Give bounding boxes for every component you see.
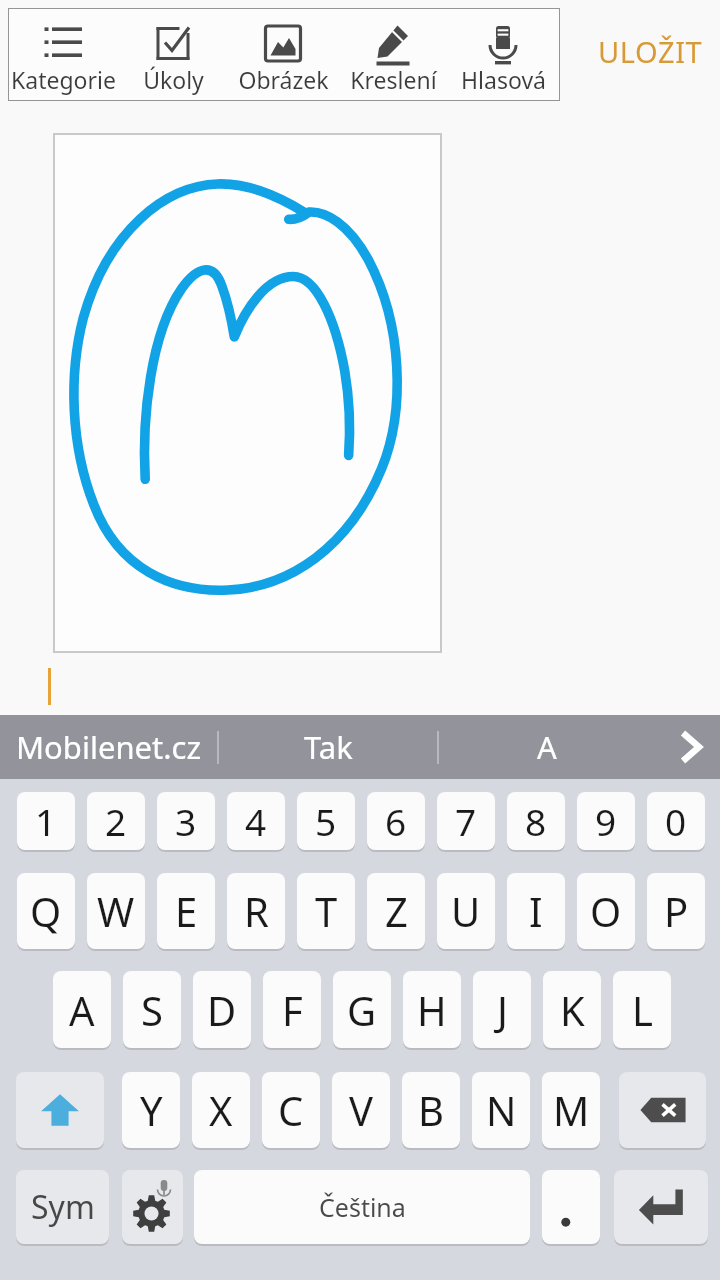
staticText: Q <box>30 884 62 938</box>
staticText: H <box>417 983 447 1037</box>
staticText: 8 <box>525 796 547 846</box>
button[interactable]: 8 <box>507 792 565 850</box>
button[interactable]: Kategorie <box>8 9 118 100</box>
staticText: Mobilenet.cz <box>16 726 202 768</box>
staticText: L <box>632 983 653 1037</box>
button[interactable]: T <box>297 873 355 949</box>
button[interactable]: A <box>53 971 111 1048</box>
button[interactable]: F <box>263 971 321 1048</box>
button[interactable]: L <box>613 971 671 1048</box>
button[interactable]: S <box>123 971 181 1048</box>
button[interactable]: C <box>262 1072 320 1148</box>
staticText: J <box>497 983 508 1037</box>
staticText: F <box>282 983 303 1037</box>
staticText: Čeština <box>319 1190 406 1224</box>
staticText: W <box>97 884 135 938</box>
staticText: I <box>529 884 543 938</box>
button[interactable]: Hlasová <box>448 9 558 100</box>
button[interactable]: Mobilenet.cz <box>0 715 217 779</box>
button[interactable]: U <box>437 873 495 949</box>
staticText: 5 <box>315 796 337 846</box>
button[interactable]: P <box>647 873 705 949</box>
button[interactable]: Tak <box>219 715 437 779</box>
staticText: Kategorie <box>11 64 116 95</box>
staticText: 2 <box>105 796 127 846</box>
button[interactable]: 0 <box>647 792 705 850</box>
staticText: N <box>486 1083 517 1137</box>
staticText: 1 <box>35 796 57 846</box>
staticText: Sym <box>31 1185 95 1229</box>
staticText: C <box>278 1083 304 1137</box>
button[interactable]: V <box>332 1072 390 1148</box>
button[interactable]: A <box>439 715 654 779</box>
staticText: A <box>537 726 557 768</box>
button[interactable]: R <box>227 873 285 949</box>
button[interactable]: N <box>472 1072 530 1148</box>
staticText: S <box>141 983 163 1037</box>
button[interactable]: 9 <box>577 792 635 850</box>
staticText: B <box>418 1083 444 1137</box>
staticText: R <box>244 884 269 938</box>
button[interactable]: E <box>157 873 215 949</box>
staticText: X <box>209 1083 233 1137</box>
button[interactable]: Sym <box>16 1170 109 1244</box>
button[interactable]: More suggestions <box>654 715 720 779</box>
button[interactable]: J <box>473 971 531 1048</box>
button[interactable]: Period <box>542 1170 600 1244</box>
button[interactable]: 1 <box>17 792 75 850</box>
button[interactable]: M <box>542 1072 600 1148</box>
staticText: G <box>347 983 377 1037</box>
button[interactable]: 4 <box>227 792 285 850</box>
staticText: M <box>553 1083 590 1137</box>
button[interactable]: Shift <box>16 1072 104 1148</box>
button[interactable]: 5 <box>297 792 355 850</box>
staticText: Z <box>385 884 408 938</box>
staticText: O <box>590 884 622 938</box>
button[interactable]: H <box>403 971 461 1048</box>
button[interactable]: B <box>402 1072 460 1148</box>
staticText: T <box>315 884 338 938</box>
button[interactable]: Úkoly <box>118 9 228 100</box>
button[interactable]: 3 <box>157 792 215 850</box>
button[interactable]: Z <box>367 873 425 949</box>
staticText: Y <box>140 1083 163 1137</box>
button[interactable]: W <box>87 873 145 949</box>
button[interactable]: Enter <box>614 1170 708 1244</box>
staticText: 9 <box>595 796 617 846</box>
staticText: K <box>560 983 585 1037</box>
button[interactable]: Kreslení <box>338 9 448 100</box>
button[interactable]: X <box>192 1072 250 1148</box>
staticText: D <box>207 983 237 1037</box>
staticText: Obrázek <box>238 64 329 95</box>
staticText: E <box>175 884 198 938</box>
staticText: U <box>451 884 481 938</box>
button[interactable]: O <box>577 873 635 949</box>
staticText: 6 <box>385 796 407 846</box>
staticText: V <box>349 1083 373 1137</box>
staticText: Hlasová <box>461 64 546 95</box>
staticText: Tak <box>304 726 353 768</box>
button[interactable]: Čeština <box>194 1170 530 1244</box>
button[interactable]: 6 <box>367 792 425 850</box>
staticText: Úkoly <box>143 64 204 95</box>
staticText: A <box>69 983 95 1037</box>
button[interactable]: Y <box>122 1072 180 1148</box>
staticText: Kreslení <box>350 64 437 95</box>
staticText: 4 <box>245 796 267 846</box>
button[interactable]: I <box>507 873 565 949</box>
button[interactable]: Obrázek <box>228 9 338 100</box>
button[interactable]: G <box>333 971 391 1048</box>
staticText: 7 <box>455 796 477 846</box>
button[interactable]: Settings <box>122 1170 183 1244</box>
button[interactable]: Backspace <box>619 1072 706 1148</box>
button[interactable]: ULOŽIT <box>590 24 711 79</box>
button[interactable]: Q <box>17 873 75 949</box>
staticText: ULOŽIT <box>598 32 703 71</box>
button[interactable]: 2 <box>87 792 145 850</box>
button[interactable]: K <box>543 971 601 1048</box>
staticText: 0 <box>665 796 687 846</box>
staticText: 3 <box>175 796 197 846</box>
staticText: P <box>664 884 689 938</box>
button[interactable]: 7 <box>437 792 495 850</box>
button[interactable]: D <box>193 971 251 1048</box>
